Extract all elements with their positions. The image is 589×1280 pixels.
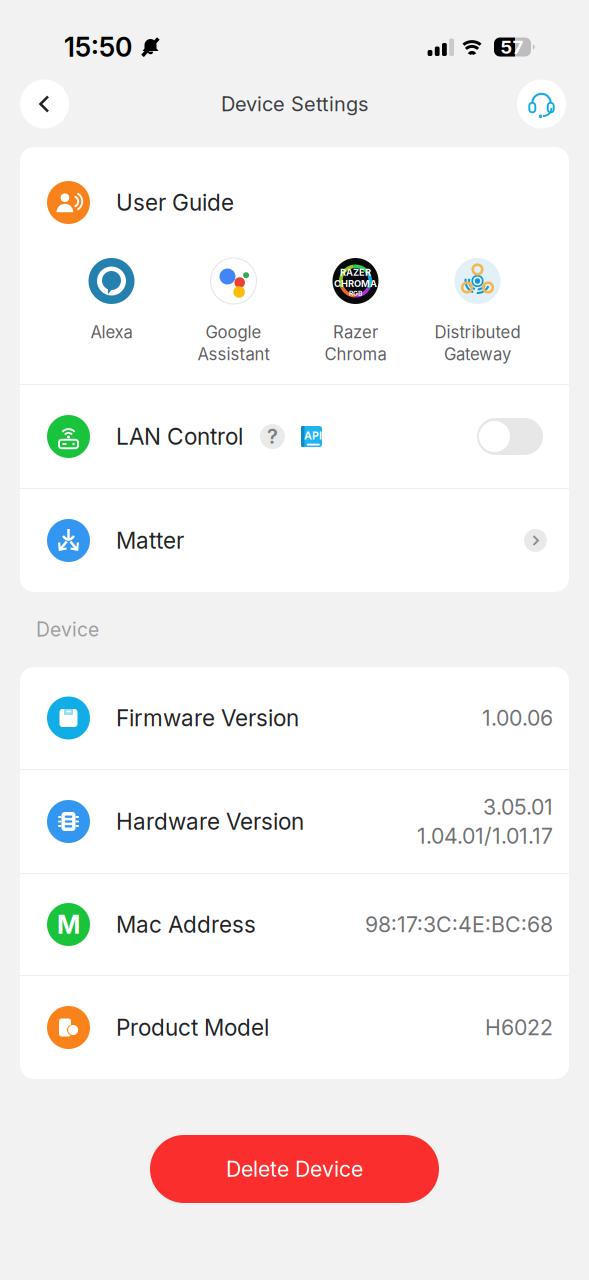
staticText: Assistant: [197, 344, 269, 364]
button[interactable]: Hardware Version: [20, 770, 569, 873]
staticText: Firmware Version: [116, 704, 299, 732]
staticText: Hardware Version: [116, 808, 304, 835]
staticText: Matter: [116, 527, 184, 554]
staticText: User Guide: [116, 189, 234, 216]
staticText: 1.04.01/1.01.17: [417, 823, 553, 849]
staticText: 57: [500, 36, 523, 58]
staticText: 1.00.06: [482, 705, 553, 731]
staticText: Delete Device: [226, 1156, 363, 1182]
staticText: Razer: [333, 322, 378, 342]
staticText: LAN Control: [116, 423, 243, 450]
staticText: API: [304, 429, 322, 442]
staticText: Distributed: [434, 322, 520, 342]
button[interactable]: Back: [20, 79, 69, 128]
staticText: 15:50: [64, 31, 132, 63]
button[interactable]: Firmware Version: [20, 667, 569, 769]
staticText: Device: [36, 618, 99, 641]
staticText: Gateway: [444, 344, 511, 364]
staticText: M: [57, 909, 80, 940]
staticText: H6022: [485, 1015, 553, 1040]
staticText: Device Settings: [221, 92, 368, 116]
button[interactable]: User Guide: [20, 147, 569, 384]
staticText: Chroma: [324, 344, 386, 364]
staticText: 3.05.01: [483, 794, 553, 820]
staticText: CHROMA: [334, 278, 377, 289]
staticText: ?: [267, 424, 278, 449]
button[interactable]: M: [20, 874, 569, 975]
staticText: Product Model: [116, 1014, 269, 1041]
button[interactable]: Matter: [20, 489, 569, 592]
button[interactable]: Customer support: [517, 79, 566, 128]
staticText: 98:17:3C:4E:BC:68: [365, 912, 553, 937]
staticText: RAZER: [340, 267, 371, 278]
staticText: Google: [205, 322, 261, 342]
staticText: RGB: [349, 289, 362, 297]
staticText: Alexa: [90, 322, 132, 342]
button[interactable]: LAN Control: [20, 385, 569, 488]
button[interactable]: Delete Device: [150, 1135, 439, 1203]
button[interactable]: Product Model: [20, 976, 569, 1079]
staticText: Mac Address: [116, 911, 256, 938]
